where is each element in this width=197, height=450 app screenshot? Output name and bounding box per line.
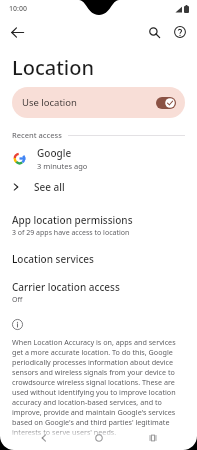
button[interactable]: App location permissions [0, 206, 197, 245]
staticText: Carrier location access [12, 280, 120, 294]
button[interactable]: See all [0, 174, 197, 200]
button[interactable]: Back [4, 19, 30, 45]
staticText: See all [34, 180, 65, 194]
button[interactable]: Help [167, 19, 193, 45]
button[interactable]: Use location [12, 87, 185, 118]
button[interactable]: Recents [143, 428, 163, 447]
button[interactable]: Google [0, 142, 197, 174]
staticText: Location services [12, 252, 94, 266]
staticText: 10:00 [9, 4, 27, 14]
button[interactable]: Location services [0, 245, 197, 273]
button[interactable]: Carrier location access [0, 273, 197, 312]
staticText: Recent access [12, 130, 62, 140]
staticText: Google [37, 146, 72, 160]
button[interactable]: Search [141, 19, 167, 45]
staticText: Off [12, 295, 23, 305]
staticText: 3 of 29 apps have access to location [12, 228, 130, 238]
button[interactable]: Home [89, 428, 109, 447]
staticText: Location [12, 54, 94, 81]
staticText: App location permissions [12, 213, 133, 227]
staticText: 3 minutes ago [37, 161, 88, 171]
button[interactable]: Back [34, 428, 54, 447]
staticText: When Location Accuracy is on, apps and s… [12, 337, 186, 437]
staticText: Use location [22, 96, 156, 109]
